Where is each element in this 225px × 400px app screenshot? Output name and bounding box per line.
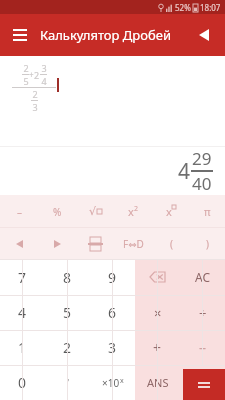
staticText: F⇔D xyxy=(123,237,144,251)
button[interactable]: 8 xyxy=(45,259,90,295)
staticText: ×10 xyxy=(102,376,120,390)
staticText: 5 xyxy=(23,75,29,87)
staticText: 8 xyxy=(63,268,72,287)
button[interactable]: Minus xyxy=(180,330,225,365)
staticText: 52% xyxy=(175,2,191,13)
staticText: √ xyxy=(89,205,97,218)
staticText: ANS xyxy=(147,375,169,390)
staticText: x xyxy=(166,204,172,219)
button[interactable]: Menu xyxy=(6,21,34,49)
button[interactable]: Decimal point xyxy=(45,365,90,400)
button[interactable]: 7 xyxy=(0,259,45,295)
button[interactable]: Answer xyxy=(135,365,180,400)
staticText: ) xyxy=(206,237,209,251)
staticText: 2 xyxy=(32,88,38,100)
button[interactable]: 4 xyxy=(0,295,45,330)
staticText: 6 xyxy=(108,303,117,322)
button[interactable]: All clear xyxy=(180,259,225,295)
staticText: 29 xyxy=(192,147,212,170)
staticText: 4 xyxy=(18,303,27,322)
staticText: 2 xyxy=(134,204,139,214)
staticText: 2 xyxy=(23,62,29,74)
button[interactable]: 2 xyxy=(45,330,90,365)
button[interactable]: x to power xyxy=(152,195,190,228)
staticText: – xyxy=(17,205,22,219)
staticText: 2 xyxy=(34,69,40,81)
button[interactable]: Move left xyxy=(0,228,38,259)
button[interactable]: 9 xyxy=(90,259,135,295)
staticText: x xyxy=(128,204,134,219)
button[interactable]: Equals xyxy=(183,369,225,400)
button[interactable]: close parenthesis xyxy=(190,228,225,259)
staticText: 1 xyxy=(18,338,27,357)
staticText: π xyxy=(204,205,211,219)
staticText: 3 xyxy=(41,62,47,74)
button[interactable]: Move right xyxy=(38,228,76,259)
button[interactable]: square root xyxy=(76,195,114,228)
button[interactable]: 1 xyxy=(0,330,45,365)
button[interactable]: Fraction decimal toggle xyxy=(114,228,152,259)
staticText: ÷ xyxy=(199,304,207,322)
staticText: 7 xyxy=(18,268,27,287)
button[interactable]: 6 xyxy=(90,295,135,330)
button[interactable]: Divide xyxy=(180,295,225,330)
staticText: 40 xyxy=(192,172,212,195)
button[interactable]: Times ten to power xyxy=(90,365,135,400)
staticText: % xyxy=(53,205,62,219)
staticText: 2 xyxy=(63,338,72,357)
button[interactable]: pi xyxy=(190,195,225,228)
button[interactable]: x squared xyxy=(114,195,152,228)
button[interactable]: 0 xyxy=(0,365,45,400)
button[interactable]: Fraction template xyxy=(76,228,114,259)
staticText: AC xyxy=(195,269,211,285)
button[interactable]: Multiply xyxy=(135,295,180,330)
staticText: 18:07 xyxy=(200,2,221,13)
staticText: + xyxy=(153,338,162,357)
staticText: 3 xyxy=(108,338,117,357)
button[interactable]: 3 xyxy=(90,330,135,365)
staticText: 4 xyxy=(41,75,47,87)
button[interactable]: percent xyxy=(38,195,76,228)
staticText: × xyxy=(154,304,162,322)
button[interactable]: Backspace xyxy=(135,259,180,295)
button[interactable]: minus sign xyxy=(0,195,38,228)
staticText: 0 xyxy=(18,373,27,392)
button[interactable]: Plus xyxy=(135,330,180,365)
staticText: 9 xyxy=(108,268,117,287)
staticText: Калькулятор Дробей xyxy=(40,26,171,44)
staticText: x xyxy=(120,376,124,386)
staticText: 3 xyxy=(32,101,38,113)
staticText: + xyxy=(29,69,34,80)
staticText: ( xyxy=(170,237,173,251)
button[interactable]: 5 xyxy=(45,295,90,330)
button[interactable]: Back xyxy=(191,22,217,48)
staticText: 4 xyxy=(178,157,191,186)
button[interactable]: open parenthesis xyxy=(152,228,190,259)
staticText: 5 xyxy=(63,303,72,322)
staticText: – xyxy=(199,338,206,357)
staticText: ʼ xyxy=(67,375,69,390)
